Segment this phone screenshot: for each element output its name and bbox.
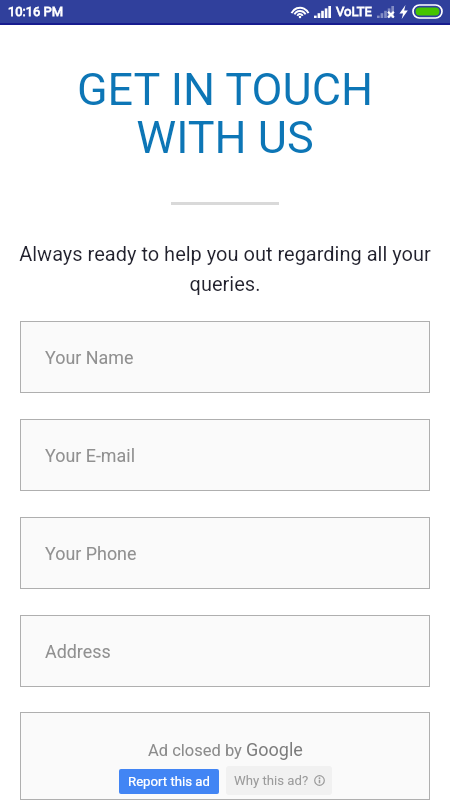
button[interactable]: Why this ad? bbox=[226, 766, 332, 795]
staticText: Why this ad? bbox=[234, 773, 309, 788]
other: Ad info bbox=[314, 775, 325, 786]
button[interactable]: Your E-mail bbox=[20, 419, 430, 491]
staticText: Your Name bbox=[45, 347, 134, 368]
staticText: Your E-mail bbox=[45, 445, 135, 466]
button[interactable]: Your Phone bbox=[20, 517, 430, 589]
staticText: Ad closed by bbox=[148, 741, 246, 760]
staticText: Address bbox=[45, 641, 111, 662]
staticText: 10:16 PM bbox=[8, 4, 64, 19]
staticText: Google bbox=[246, 739, 303, 760]
staticText: Report this ad bbox=[128, 774, 210, 789]
staticText: VoLTE bbox=[336, 4, 372, 19]
button[interactable]: Address bbox=[20, 615, 430, 687]
button[interactable]: Report this ad bbox=[119, 769, 219, 794]
staticText: Always ready to help you out regarding a… bbox=[10, 242, 440, 296]
other: Wi-Fi bbox=[291, 5, 309, 19]
button[interactable]: Your Name bbox=[20, 321, 430, 393]
staticText: Your Phone bbox=[45, 543, 137, 564]
staticText: GET IN TOUCH WITH US bbox=[0, 63, 450, 164]
